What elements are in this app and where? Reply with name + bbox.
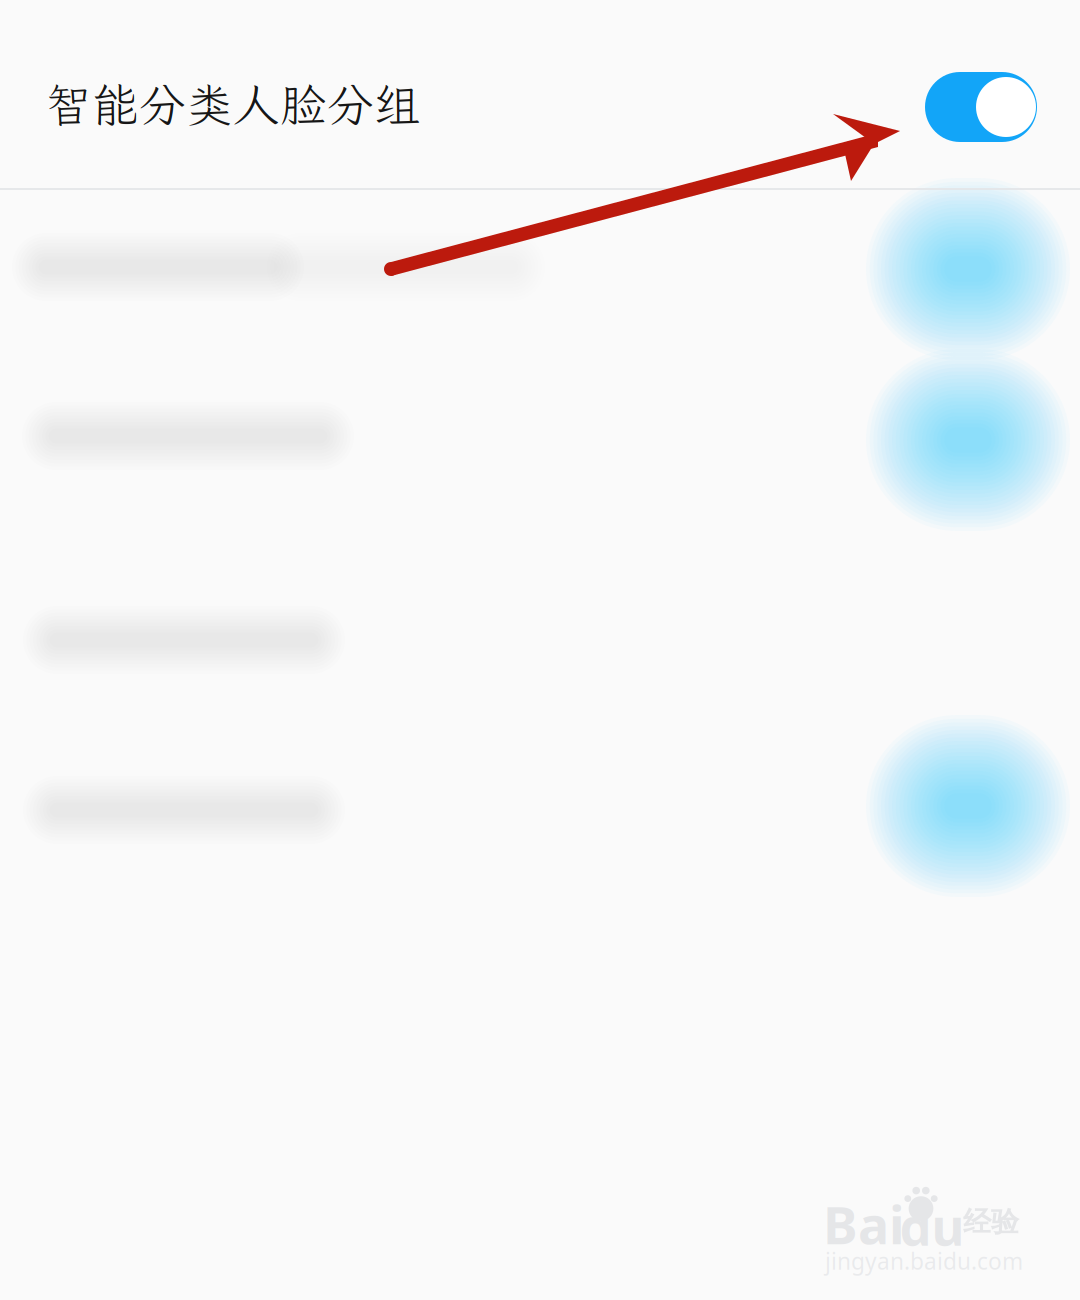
staticText: 经验 <box>963 1205 1019 1239</box>
staticText: 智能分类人脸分组 <box>45 73 421 135</box>
staticText: du <box>899 1192 964 1260</box>
staticText: Bai <box>823 1189 905 1259</box>
button[interactable]: 智能分类人脸分组 <box>0 0 1080 1300</box>
staticText: jingyan.baidu.com <box>825 1246 1023 1276</box>
